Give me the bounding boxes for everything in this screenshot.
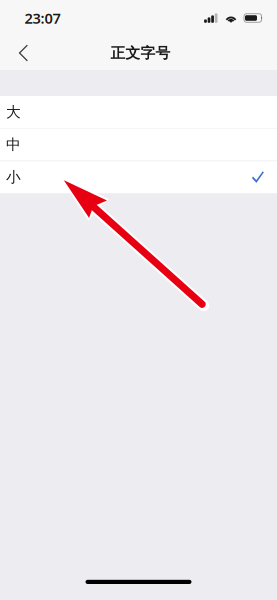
staticText: 23:07	[24, 8, 60, 28]
staticText: 小	[6, 168, 21, 186]
staticText: 中	[6, 136, 21, 154]
button[interactable]: 中	[0, 129, 277, 161]
staticText: 正文字号	[110, 44, 170, 62]
button[interactable]: 小	[0, 161, 277, 193]
staticText: 大	[6, 103, 21, 121]
button[interactable]: 大	[0, 96, 277, 128]
button[interactable]: Back	[0, 37, 39, 69]
